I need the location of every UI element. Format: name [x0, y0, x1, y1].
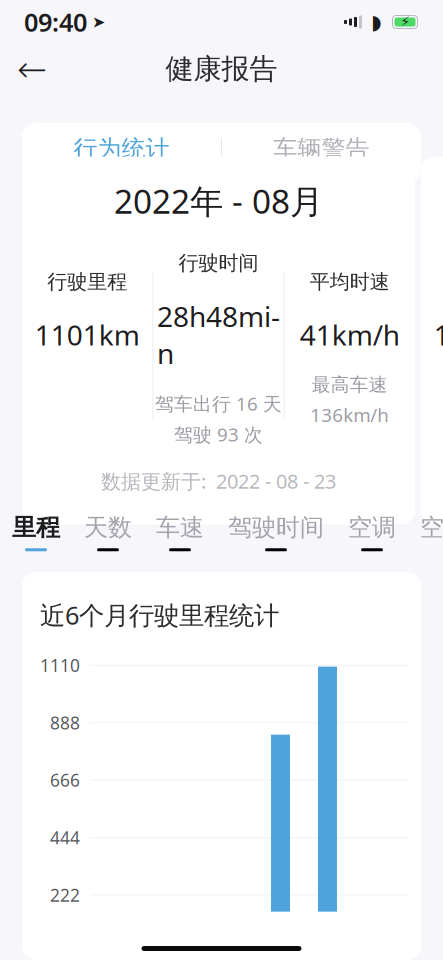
staticText: 空调内外循环: [420, 513, 443, 542]
staticText: 行为统计: [73, 134, 169, 164]
staticText: ➤: [92, 13, 105, 31]
staticText: 2022年 - 08月: [114, 179, 323, 223]
staticText: 健康报告: [165, 52, 277, 86]
staticText: 888: [50, 711, 80, 734]
staticText: ⚡︎: [400, 14, 409, 29]
staticText: 空调: [348, 513, 396, 542]
staticText: 41km/h: [300, 316, 400, 353]
staticText: 车速: [156, 513, 204, 542]
staticText: 行驶时间: [178, 251, 258, 275]
staticText: 平均时速: [310, 269, 390, 294]
staticText: 444: [50, 826, 80, 849]
button[interactable]: 里程: [12, 513, 60, 551]
button[interactable]: 返回: [8, 47, 56, 91]
staticText: 136km/h: [310, 402, 389, 427]
staticText: 驾驶时间: [228, 513, 324, 542]
staticText: 里程: [12, 513, 60, 542]
staticText: ←: [17, 49, 47, 89]
staticText: 28h48min: [157, 297, 280, 372]
staticText: 1110: [40, 654, 80, 677]
button[interactable]: 车速: [156, 513, 204, 551]
staticText: 最高车速: [312, 373, 388, 396]
staticText: 驾车出行 16 天: [155, 391, 282, 416]
staticText: 666: [50, 769, 80, 792]
staticText: 1101km: [434, 316, 443, 353]
button[interactable]: 空调: [348, 513, 396, 551]
button[interactable]: 车辆警告: [222, 123, 421, 183]
button[interactable]: 行为统计: [22, 123, 221, 183]
staticText: 近6个月行驶里程统计: [40, 598, 279, 632]
staticText: 驾驶 93 次: [174, 422, 263, 447]
staticText: 天数: [84, 513, 132, 542]
button[interactable]: 天数: [84, 513, 132, 551]
staticText: 数据更新于: 2022 - 08 - 23: [101, 468, 336, 494]
staticText: 1101km: [35, 316, 140, 353]
staticText: 09:40: [24, 5, 87, 39]
staticText: 车辆警告: [273, 134, 369, 164]
button[interactable]: 空调内外循环: [420, 513, 443, 551]
staticText: 行驶里程: [47, 269, 127, 294]
staticText: ◗: [371, 11, 382, 33]
staticText: 222: [50, 883, 80, 906]
button[interactable]: 驾驶时间: [228, 513, 324, 551]
